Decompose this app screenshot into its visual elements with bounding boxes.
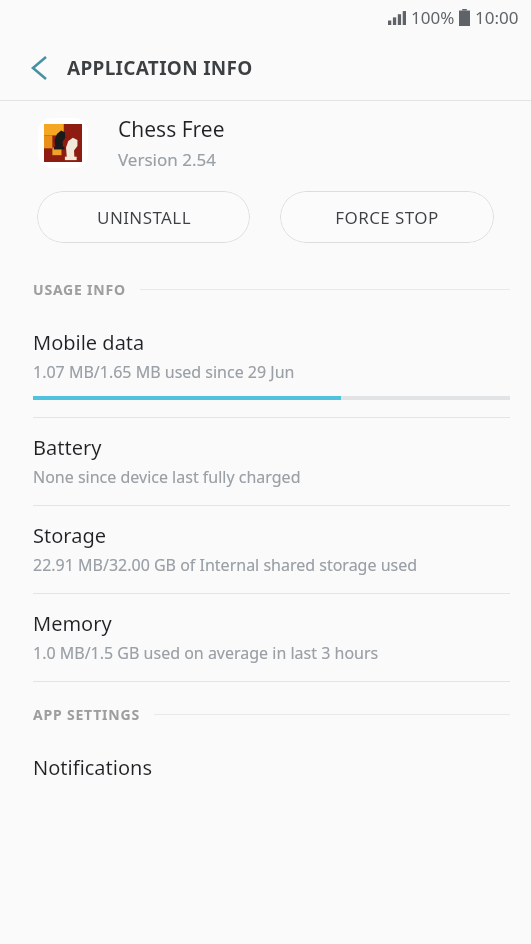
staticText: APPLICATION INFO <box>67 55 253 81</box>
button[interactable]: Storage <box>0 506 531 594</box>
staticText: 100% <box>411 6 455 29</box>
button[interactable]: FORCE STOP <box>280 191 494 243</box>
button[interactable]: Back <box>22 51 56 85</box>
staticText: Notifications <box>33 754 152 781</box>
staticText: Version 2.54 <box>118 148 216 171</box>
button[interactable]: UNINSTALL <box>37 191 250 243</box>
staticText: None since device last fully charged <box>33 466 301 488</box>
button[interactable]: Memory <box>0 594 531 682</box>
staticText: Chess Free <box>118 115 225 144</box>
button[interactable]: Battery <box>0 418 531 506</box>
staticText: 1.0 MB/1.5 GB used on average in last 3 … <box>33 642 379 664</box>
button[interactable]: Mobile data <box>0 313 531 418</box>
button[interactable]: Notifications <box>0 738 531 781</box>
staticText: Storage <box>33 522 106 549</box>
staticText: UNINSTALL <box>97 206 191 229</box>
staticText: APP SETTINGS <box>33 705 140 724</box>
staticText: Mobile data <box>33 329 145 356</box>
staticText: 22.91 MB/32.00 GB of Internal shared sto… <box>33 554 418 576</box>
staticText: 10:00 <box>475 6 519 29</box>
staticText: Battery <box>33 434 102 461</box>
staticText: Memory <box>33 610 112 637</box>
staticText: USAGE INFO <box>33 280 126 299</box>
staticText: FORCE STOP <box>335 206 439 229</box>
staticText: 1.07 MB/1.65 MB used since 29 Jun <box>33 361 295 383</box>
